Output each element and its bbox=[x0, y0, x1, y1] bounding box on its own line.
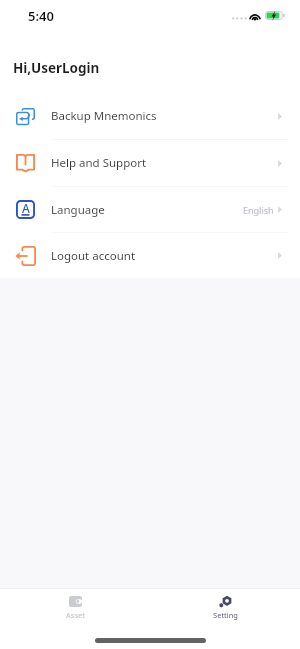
staticText: English bbox=[243, 204, 274, 216]
staticText: Help and Support bbox=[51, 155, 147, 171]
staticText: 5:40 bbox=[28, 7, 54, 25]
button[interactable]: Logout account bbox=[0, 233, 300, 278]
staticText: Language bbox=[51, 202, 105, 218]
staticText: A bbox=[22, 200, 30, 216]
button[interactable]: Asset bbox=[0, 589, 150, 631]
staticText: Backup Mnemonics bbox=[51, 108, 157, 124]
button[interactable]: Backup Mnemonics bbox=[0, 93, 300, 139]
button[interactable]: Language bbox=[0, 187, 300, 232]
staticText: Setting bbox=[213, 610, 238, 620]
button[interactable]: Help and Support bbox=[0, 140, 300, 186]
staticText: Logout account bbox=[51, 248, 136, 264]
button[interactable]: Setting bbox=[150, 589, 300, 631]
staticText: Asset bbox=[66, 610, 85, 620]
staticText: Hi,UserLogin bbox=[13, 59, 100, 77]
